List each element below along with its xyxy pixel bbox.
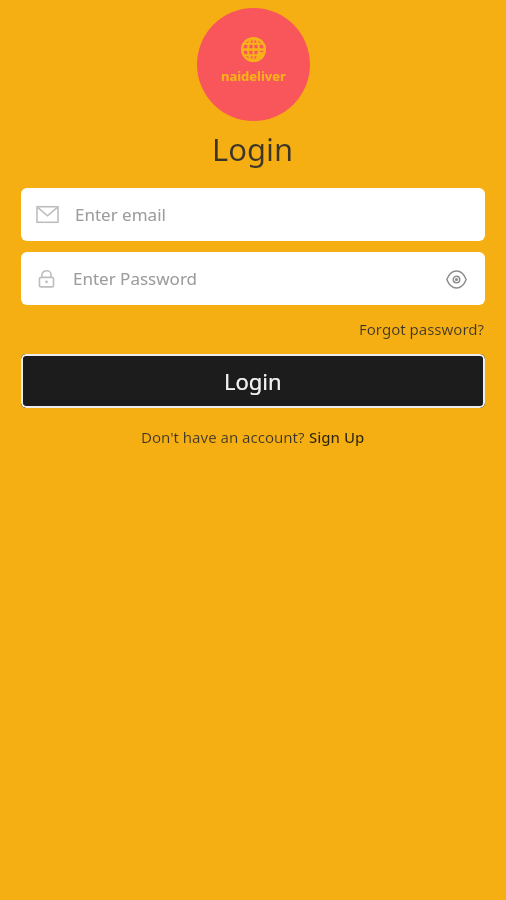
- button[interactable]: Forgot password?: [357, 316, 487, 342]
- staticText: Enter Password: [73, 267, 443, 290]
- staticText: Enter email: [75, 203, 469, 226]
- staticText: Don't have an account?: [141, 427, 309, 447]
- staticText: Login: [212, 128, 294, 170]
- button[interactable]: Enter Password: [21, 252, 485, 305]
- button[interactable]: Login: [21, 354, 485, 408]
- button[interactable]: Enter email: [21, 188, 485, 241]
- staticText: Forgot password?: [359, 319, 485, 339]
- button[interactable]: Don't have an account?: [137, 425, 369, 449]
- staticText: naideliver: [221, 67, 286, 85]
- staticText: Sign Up: [309, 427, 365, 447]
- staticText: Login: [224, 366, 282, 396]
- button[interactable]: Show password: [443, 266, 469, 292]
- button[interactable]: naideliver logo: [197, 8, 310, 121]
